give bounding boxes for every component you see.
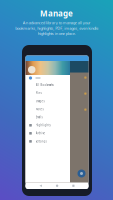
staticText: Settings: [35, 140, 46, 143]
button[interactable]: Archive: [25, 129, 70, 137]
button[interactable]: Images: [25, 97, 70, 105]
staticText: Images: [35, 99, 44, 103]
button[interactable]: Files: [25, 89, 70, 97]
button[interactable]: Emails: [25, 113, 70, 121]
button[interactable]: Notes: [25, 105, 70, 113]
button[interactable]: Highlights: [25, 121, 70, 129]
staticText: Archive: [35, 132, 45, 135]
staticText: Manage: [40, 8, 73, 19]
staticText: Notes: [35, 107, 43, 111]
staticText: Files: [35, 91, 41, 95]
staticText: All Bookmarks: [35, 83, 53, 87]
staticText: An advanced library to manage all your b…: [15, 20, 98, 36]
button[interactable]: All Bookmarks: [25, 81, 70, 89]
button[interactable]: Settings: [25, 137, 70, 145]
staticText: Highlights: [35, 123, 50, 127]
staticText: Emails: [35, 115, 42, 119]
button[interactable]: [25, 75, 70, 81]
